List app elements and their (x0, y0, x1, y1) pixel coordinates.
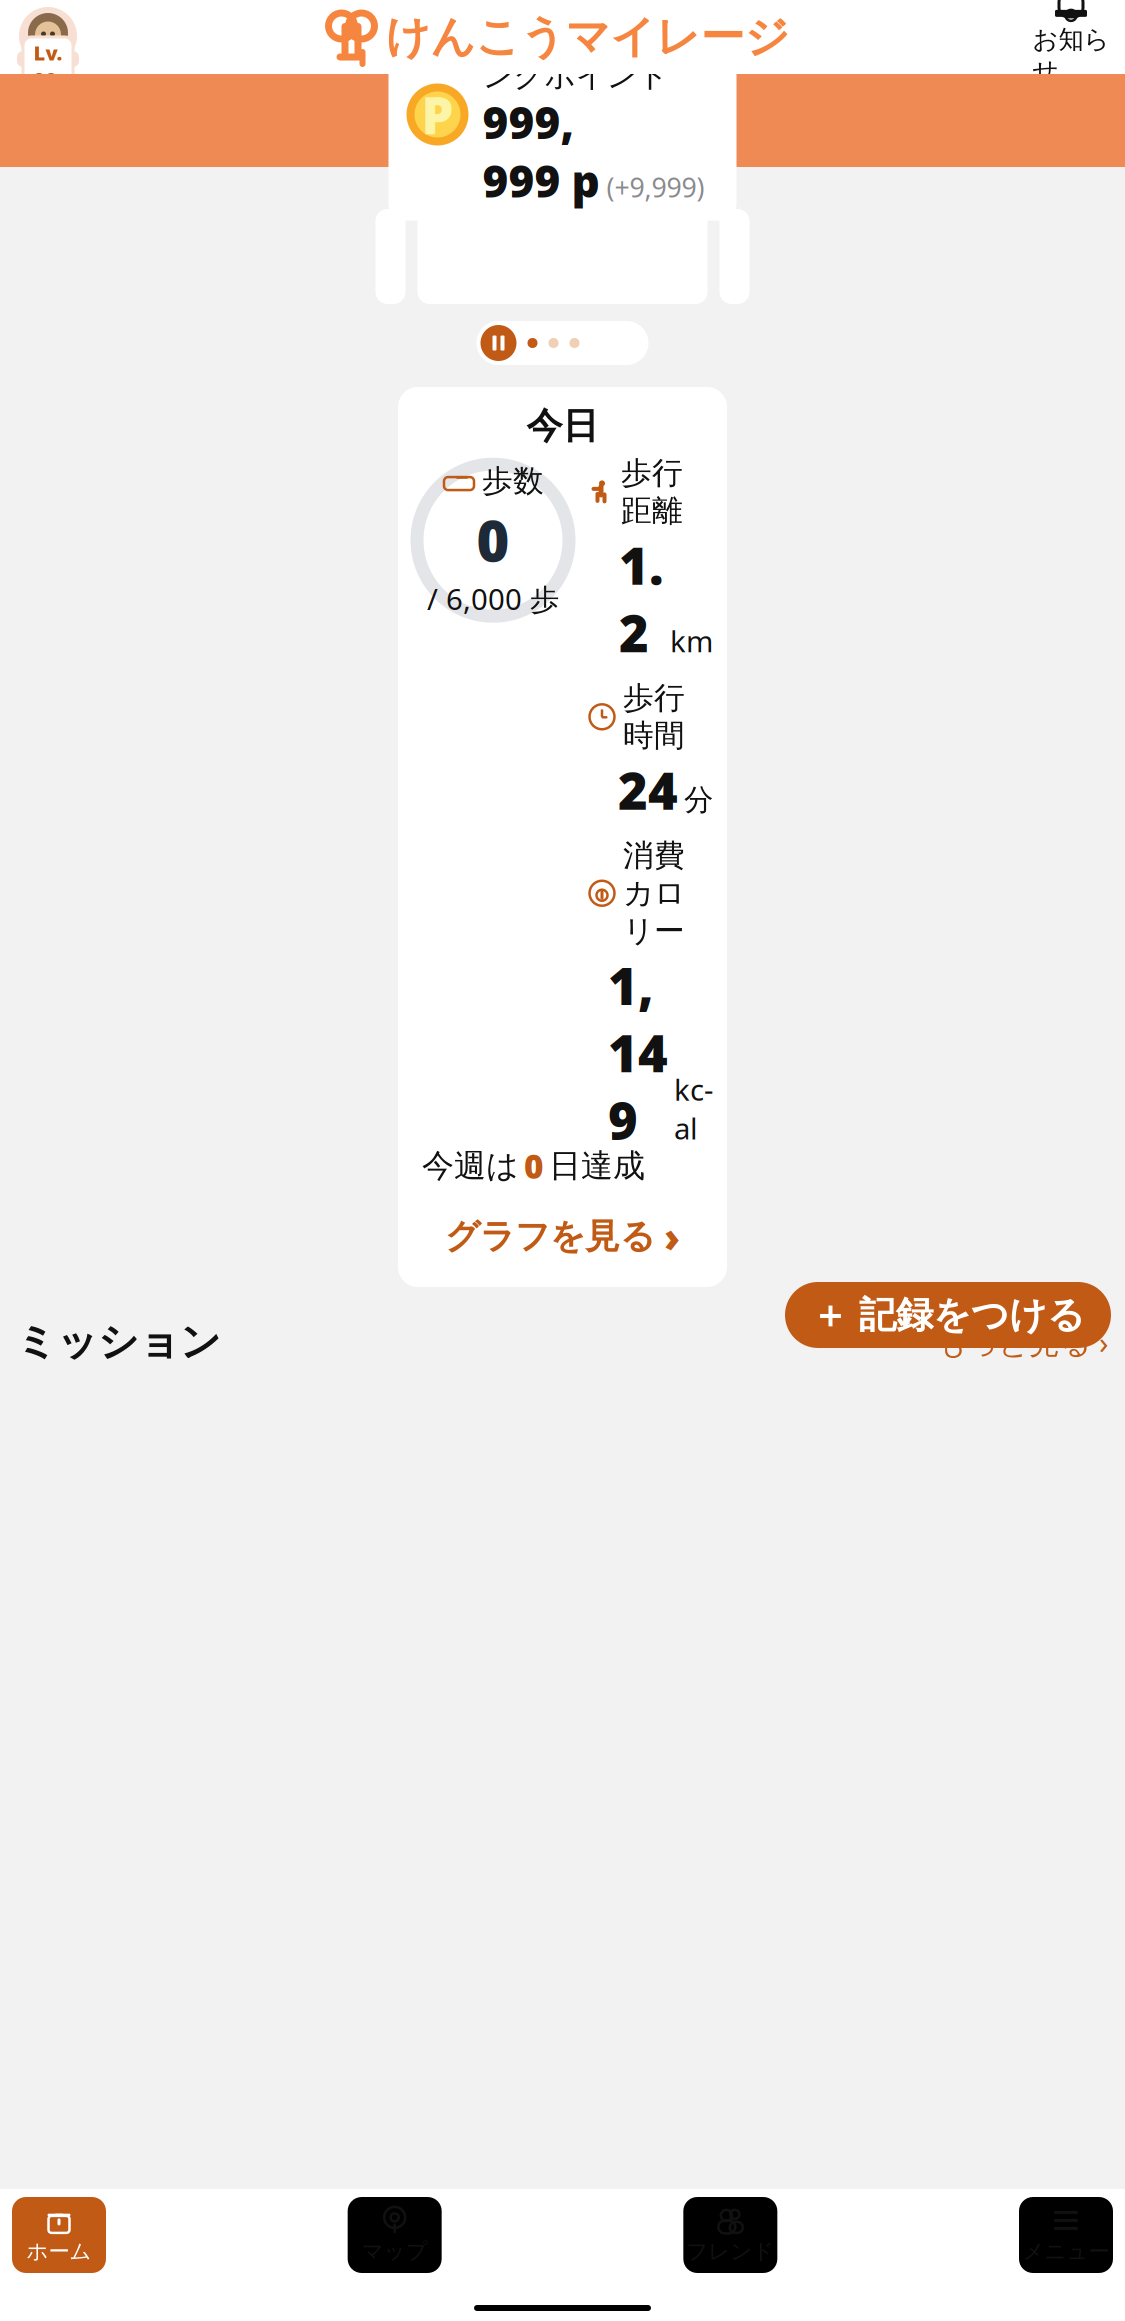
button[interactable]: グラフを見る (398, 1200, 727, 1273)
staticText: お知らせ (1032, 24, 1109, 86)
staticText: 今日 (526, 404, 598, 448)
staticText: 歩行時間 (623, 679, 685, 754)
button[interactable]: ホーム (12, 2197, 106, 2273)
staticText: 記録をつける (859, 1292, 1085, 1338)
staticText: 分 (684, 782, 713, 818)
button[interactable]: マップ (348, 2197, 442, 2273)
staticText: P (421, 81, 453, 148)
staticText: 0 (524, 1144, 544, 1188)
staticText: けんこうマイレージ (385, 10, 789, 64)
button[interactable]: ＋ (785, 1282, 1111, 1348)
staticText: 歩数 (482, 462, 544, 500)
staticText: マップ (362, 2238, 428, 2265)
staticText: / 6,000 歩 (427, 579, 559, 618)
staticText: ＋ (811, 1292, 848, 1338)
staticText: もっと見る › (936, 1322, 1109, 1362)
staticText: ミッション (16, 1317, 221, 1366)
button[interactable]: 一時停止 (476, 321, 648, 365)
staticText: km (670, 621, 713, 660)
staticText: グラフを見る (445, 1215, 655, 1258)
staticText: メニュー (1022, 2238, 1109, 2265)
button[interactable]: メニュー (1019, 2197, 1113, 2273)
staticText: kcal (674, 1070, 713, 1148)
staticText: 999,999 p (482, 93, 599, 210)
staticText: 日達成 (549, 1146, 645, 1185)
staticText: Lv.99 (33, 39, 62, 92)
staticText: 消費カロリー (623, 837, 685, 950)
staticText: フレンド (686, 2238, 774, 2265)
staticText: 1,149 (608, 952, 668, 1154)
staticText: 歩行距離 (621, 454, 683, 529)
staticText: › (664, 1210, 680, 1263)
staticText: (+9,999) (606, 169, 704, 205)
staticText: 1.2 (619, 532, 664, 666)
button[interactable]: プロフィール Lv.99 (12, 0, 84, 79)
staticText: ホーム (26, 2238, 91, 2265)
button[interactable]: フレンド (683, 2197, 777, 2273)
staticText: 今週は (422, 1146, 519, 1185)
staticText: 24 (618, 756, 678, 824)
staticText: 0 (476, 503, 509, 577)
button[interactable]: お知らせ (1029, 0, 1113, 86)
staticText: 健康市ウォーキングポイント (482, 19, 699, 95)
